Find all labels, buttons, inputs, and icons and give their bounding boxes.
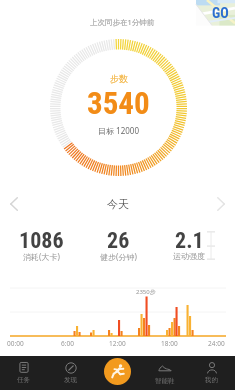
button[interactable]: 1086 xyxy=(8,228,74,264)
staticText: 24:00 xyxy=(208,339,225,348)
staticText: 2.1 xyxy=(175,228,204,254)
staticText: 智能鞋 xyxy=(155,377,175,385)
button[interactable]: Start run xyxy=(104,358,131,385)
staticText: 任务 xyxy=(17,376,30,384)
button[interactable]: Next day xyxy=(208,192,234,216)
staticText: 1086 xyxy=(19,228,64,254)
staticText: 我的 xyxy=(205,376,218,384)
staticText: 26 xyxy=(107,228,130,254)
button[interactable]: 我的 xyxy=(188,356,235,390)
staticText: 健步(分钟) xyxy=(100,251,137,261)
staticText: 00:00 xyxy=(7,339,24,348)
staticText: 12:00 xyxy=(109,339,126,348)
button[interactable]: 2.1 xyxy=(156,228,222,264)
staticText: 2350步 xyxy=(136,288,156,296)
staticText: 发现 xyxy=(64,376,77,384)
button[interactable]: Previous day xyxy=(1,192,27,216)
staticText: 运动强度 xyxy=(173,251,205,261)
staticText: 步数 xyxy=(110,73,128,84)
button[interactable]: GO map xyxy=(196,0,235,27)
staticText: 今天 xyxy=(107,197,129,211)
button[interactable]: 任务 xyxy=(0,356,47,390)
staticText: 目标 12000 xyxy=(98,125,139,136)
button[interactable]: 26 xyxy=(85,228,151,264)
staticText: 消耗(大卡) xyxy=(23,251,60,261)
staticText: GO xyxy=(212,5,229,21)
staticText: 18:00 xyxy=(161,339,178,348)
button[interactable]: 智能鞋 xyxy=(141,356,188,390)
staticText: 6:00 xyxy=(61,339,74,348)
staticText: 3540 xyxy=(87,85,150,121)
button[interactable]: 发现 xyxy=(47,356,94,390)
staticText: 上次同步在1分钟前 xyxy=(90,17,155,27)
